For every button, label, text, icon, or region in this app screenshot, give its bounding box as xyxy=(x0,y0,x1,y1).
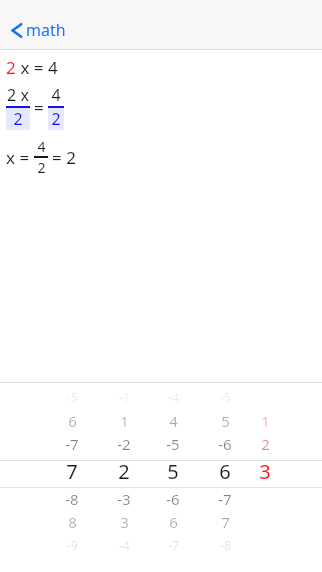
staticText: -6 xyxy=(218,434,232,454)
staticText: 7 xyxy=(66,458,78,485)
other: Back xyxy=(10,20,23,41)
button[interactable]: Number column 1 xyxy=(50,384,94,570)
staticText: math xyxy=(26,19,66,41)
staticText: -7 xyxy=(218,489,232,509)
staticText: 4 xyxy=(37,137,46,156)
button[interactable]: Number column 3 xyxy=(151,384,195,570)
staticText: 2 xyxy=(118,458,130,485)
staticText: = 2 xyxy=(52,146,76,169)
staticText: -5 xyxy=(166,434,180,454)
staticText: 1 xyxy=(120,411,129,431)
staticText: 1 xyxy=(261,411,270,431)
staticText: -1 xyxy=(119,389,130,405)
staticText: x = xyxy=(6,146,30,169)
staticText: = xyxy=(34,96,44,119)
staticText: 3 xyxy=(120,512,129,532)
staticText: 2 xyxy=(37,158,46,177)
staticText: -6 xyxy=(166,489,180,509)
staticText: 2 xyxy=(13,108,23,130)
staticText: -4 xyxy=(119,537,130,553)
staticText: 2 xyxy=(51,108,61,130)
staticText: 7 xyxy=(221,512,230,532)
staticText: 2 xyxy=(261,434,270,454)
staticText: 6 xyxy=(68,411,77,431)
button[interactable]: Number column 4 xyxy=(203,384,247,570)
staticText: x = 4 xyxy=(16,56,58,79)
staticText: 6 xyxy=(169,512,178,532)
staticText: -7 xyxy=(65,434,79,454)
staticText: -5 xyxy=(67,389,78,405)
staticText: 2 x xyxy=(7,84,29,106)
staticText: 2 xyxy=(6,56,16,79)
button[interactable]: Back xyxy=(7,17,69,43)
staticText: 8 xyxy=(68,512,77,532)
staticText: -9 xyxy=(67,537,78,553)
staticText: 6 xyxy=(219,458,231,485)
button[interactable]: Number column 5 xyxy=(243,384,287,570)
staticText: -7 xyxy=(168,537,179,553)
staticText: 5 xyxy=(167,458,179,485)
staticText: -8 xyxy=(65,489,79,509)
staticText: -4 xyxy=(168,389,179,405)
staticText: -3 xyxy=(117,489,131,509)
button[interactable]: Number column 2 xyxy=(102,384,146,570)
staticText: 4 xyxy=(51,84,61,106)
staticText: -2 xyxy=(117,434,131,454)
staticText: 5 xyxy=(221,411,230,431)
staticText: -5 xyxy=(220,389,231,405)
staticText: -8 xyxy=(220,537,231,553)
staticText: 3 xyxy=(259,458,271,485)
staticText: 4 xyxy=(169,411,178,431)
